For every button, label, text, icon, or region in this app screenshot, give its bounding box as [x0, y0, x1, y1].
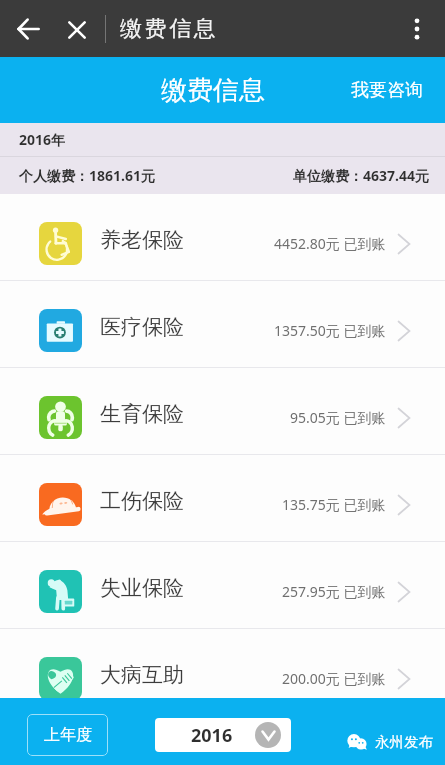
button[interactable]: 失业保险	[0, 542, 445, 628]
staticText: 大病互助	[100, 662, 184, 688]
staticText: 257.95元 已到账	[282, 582, 386, 601]
button[interactable]: 缴费信息	[161, 74, 265, 107]
staticText: 上年度	[44, 725, 92, 745]
staticText: 2016年	[19, 130, 66, 149]
other: WeChat	[346, 734, 368, 750]
staticText: 200.00元 已到账	[282, 669, 386, 688]
staticText: 95.05元 已到账	[290, 408, 386, 427]
button[interactable]: Close	[56, 0, 98, 57]
staticText: 失业保险	[100, 575, 184, 601]
staticText: 生育保险	[100, 401, 184, 427]
button[interactable]: Back	[0, 0, 56, 57]
staticText: 135.75元 已到账	[282, 495, 386, 514]
staticText: 我要咨询	[351, 79, 423, 102]
staticText: 缴费信息	[120, 15, 219, 43]
staticText: 缴费信息	[161, 74, 265, 107]
button[interactable]: 工伤保险	[0, 455, 445, 541]
staticText: 1357.50元 已到账	[274, 321, 386, 340]
staticText: 个人缴费：1861.61元	[19, 166, 155, 185]
staticText: 工伤保险	[100, 488, 184, 514]
button[interactable]: More options	[389, 0, 445, 57]
button[interactable]: 医疗保险	[0, 281, 445, 367]
staticText: 医疗保险	[100, 314, 184, 340]
staticText: 永州发布	[375, 733, 433, 751]
button[interactable]: 生育保险	[0, 368, 445, 454]
staticText: 2016	[191, 723, 233, 748]
button[interactable]: 2016	[155, 718, 291, 752]
button[interactable]: 我要咨询	[351, 79, 423, 102]
staticText: 养老保险	[100, 227, 184, 253]
button[interactable]: 养老保险	[0, 194, 445, 280]
button[interactable]: 大病互助	[0, 629, 445, 715]
staticText: 单位缴费：4637.44元	[293, 166, 429, 185]
staticText: 4452.80元 已到账	[274, 234, 386, 253]
button[interactable]: 上年度	[27, 714, 108, 756]
